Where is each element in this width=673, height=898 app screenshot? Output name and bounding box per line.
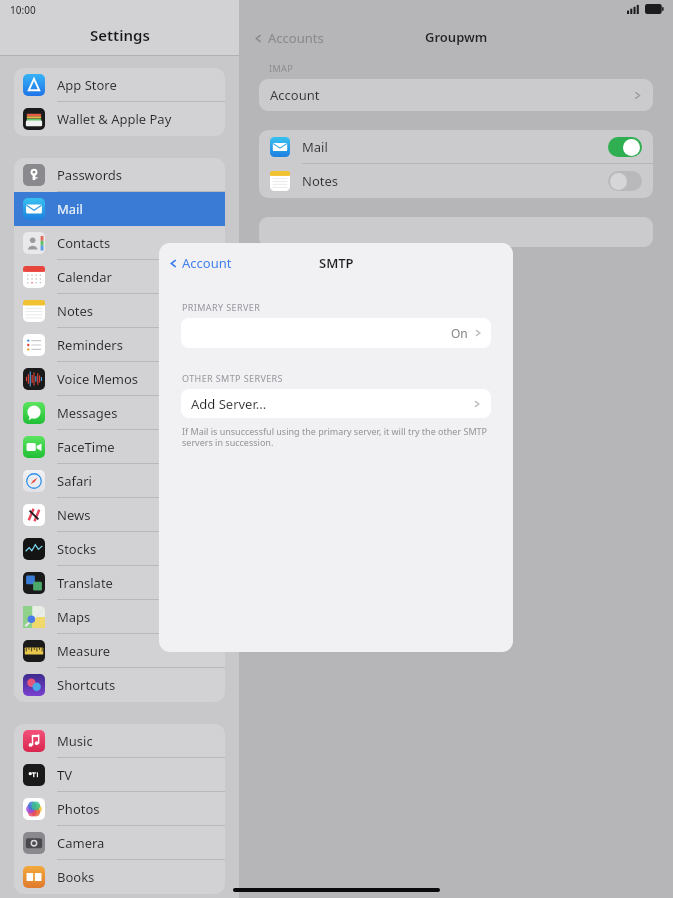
- button[interactable]: Wallet & Apple Pay: [14, 102, 225, 136]
- staticText: Passwords: [57, 166, 123, 184]
- staticText: Account: [270, 86, 320, 104]
- staticText: Books: [57, 868, 95, 886]
- button[interactable]: Passwords: [14, 158, 225, 192]
- button[interactable]: Account: [259, 79, 653, 111]
- staticText: Maps: [57, 608, 91, 626]
- button[interactable]: Notes off: [608, 171, 642, 191]
- button[interactable]: Mail: [259, 130, 653, 164]
- button[interactable]: TV: [14, 758, 225, 792]
- button[interactable]: Mail: [14, 192, 225, 226]
- button[interactable]: Maps: [14, 600, 225, 634]
- button[interactable]: FaceTime: [14, 430, 225, 464]
- button[interactable]: Notes: [14, 294, 225, 328]
- staticText: Add Server...: [191, 395, 267, 413]
- button[interactable]: On: [181, 318, 491, 348]
- staticText: Mail: [302, 138, 328, 156]
- button[interactable]: Add Server...: [181, 389, 491, 418]
- button[interactable]: Books: [14, 860, 225, 894]
- button[interactable]: News: [14, 498, 225, 532]
- button[interactable]: Translate: [14, 566, 225, 600]
- staticText: Contacts: [57, 234, 111, 252]
- staticText: Mail: [57, 200, 83, 218]
- button[interactable]: Voice Memos: [14, 362, 225, 396]
- staticText: Camera: [57, 834, 105, 852]
- staticText: Music: [57, 732, 93, 750]
- button[interactable]: Photos: [14, 792, 225, 826]
- button[interactable]: Account: [168, 254, 232, 272]
- button[interactable]: Mail on: [608, 137, 642, 157]
- staticText: FaceTime: [57, 438, 115, 456]
- staticText: Measure: [57, 642, 111, 660]
- staticText: On: [451, 325, 468, 341]
- staticText: Notes: [302, 172, 338, 190]
- button[interactable]: Camera: [14, 826, 225, 860]
- staticText: News: [57, 506, 91, 524]
- staticText: App Store: [57, 76, 117, 94]
- button[interactable]: Contacts: [14, 226, 225, 260]
- staticText: Stocks: [57, 540, 97, 558]
- button[interactable]: Messages: [14, 396, 225, 430]
- button[interactable]: Accounts: [253, 29, 324, 47]
- staticText: Messages: [57, 404, 118, 422]
- button[interactable]: Shortcuts: [14, 668, 225, 702]
- button[interactable]: Music: [14, 724, 225, 758]
- staticText: If Mail is unsuccessful using the primar…: [182, 425, 491, 449]
- button[interactable]: Measure: [14, 634, 225, 668]
- staticText: Notes: [57, 302, 93, 320]
- staticText: Voice Memos: [57, 370, 139, 388]
- staticText: Accounts: [268, 29, 324, 47]
- staticText: PRIMARY SERVER: [182, 301, 261, 313]
- staticText: Reminders: [57, 336, 123, 354]
- button[interactable]: [259, 217, 653, 247]
- staticText: IMAP: [269, 62, 294, 74]
- button[interactable]: Notes: [259, 164, 653, 198]
- staticText: Translate: [57, 574, 113, 592]
- staticText: OTHER SMTP SERVERS: [182, 372, 283, 384]
- button[interactable]: Stocks: [14, 532, 225, 566]
- button[interactable]: Safari: [14, 464, 225, 498]
- staticText: Calendar: [57, 268, 112, 286]
- staticText: Settings: [90, 25, 150, 45]
- button[interactable]: Reminders: [14, 328, 225, 362]
- staticText: Shortcuts: [57, 676, 116, 694]
- button[interactable]: Calendar: [14, 260, 225, 294]
- staticText: Groupwm: [425, 28, 488, 46]
- staticText: TV: [57, 766, 73, 784]
- staticText: Photos: [57, 800, 100, 818]
- staticText: SMTP: [319, 254, 354, 272]
- staticText: Safari: [57, 472, 92, 490]
- staticText: Account: [182, 254, 232, 272]
- button[interactable]: App Store: [14, 68, 225, 102]
- staticText: 10:00: [10, 3, 36, 17]
- staticText: Wallet & Apple Pay: [57, 110, 172, 128]
